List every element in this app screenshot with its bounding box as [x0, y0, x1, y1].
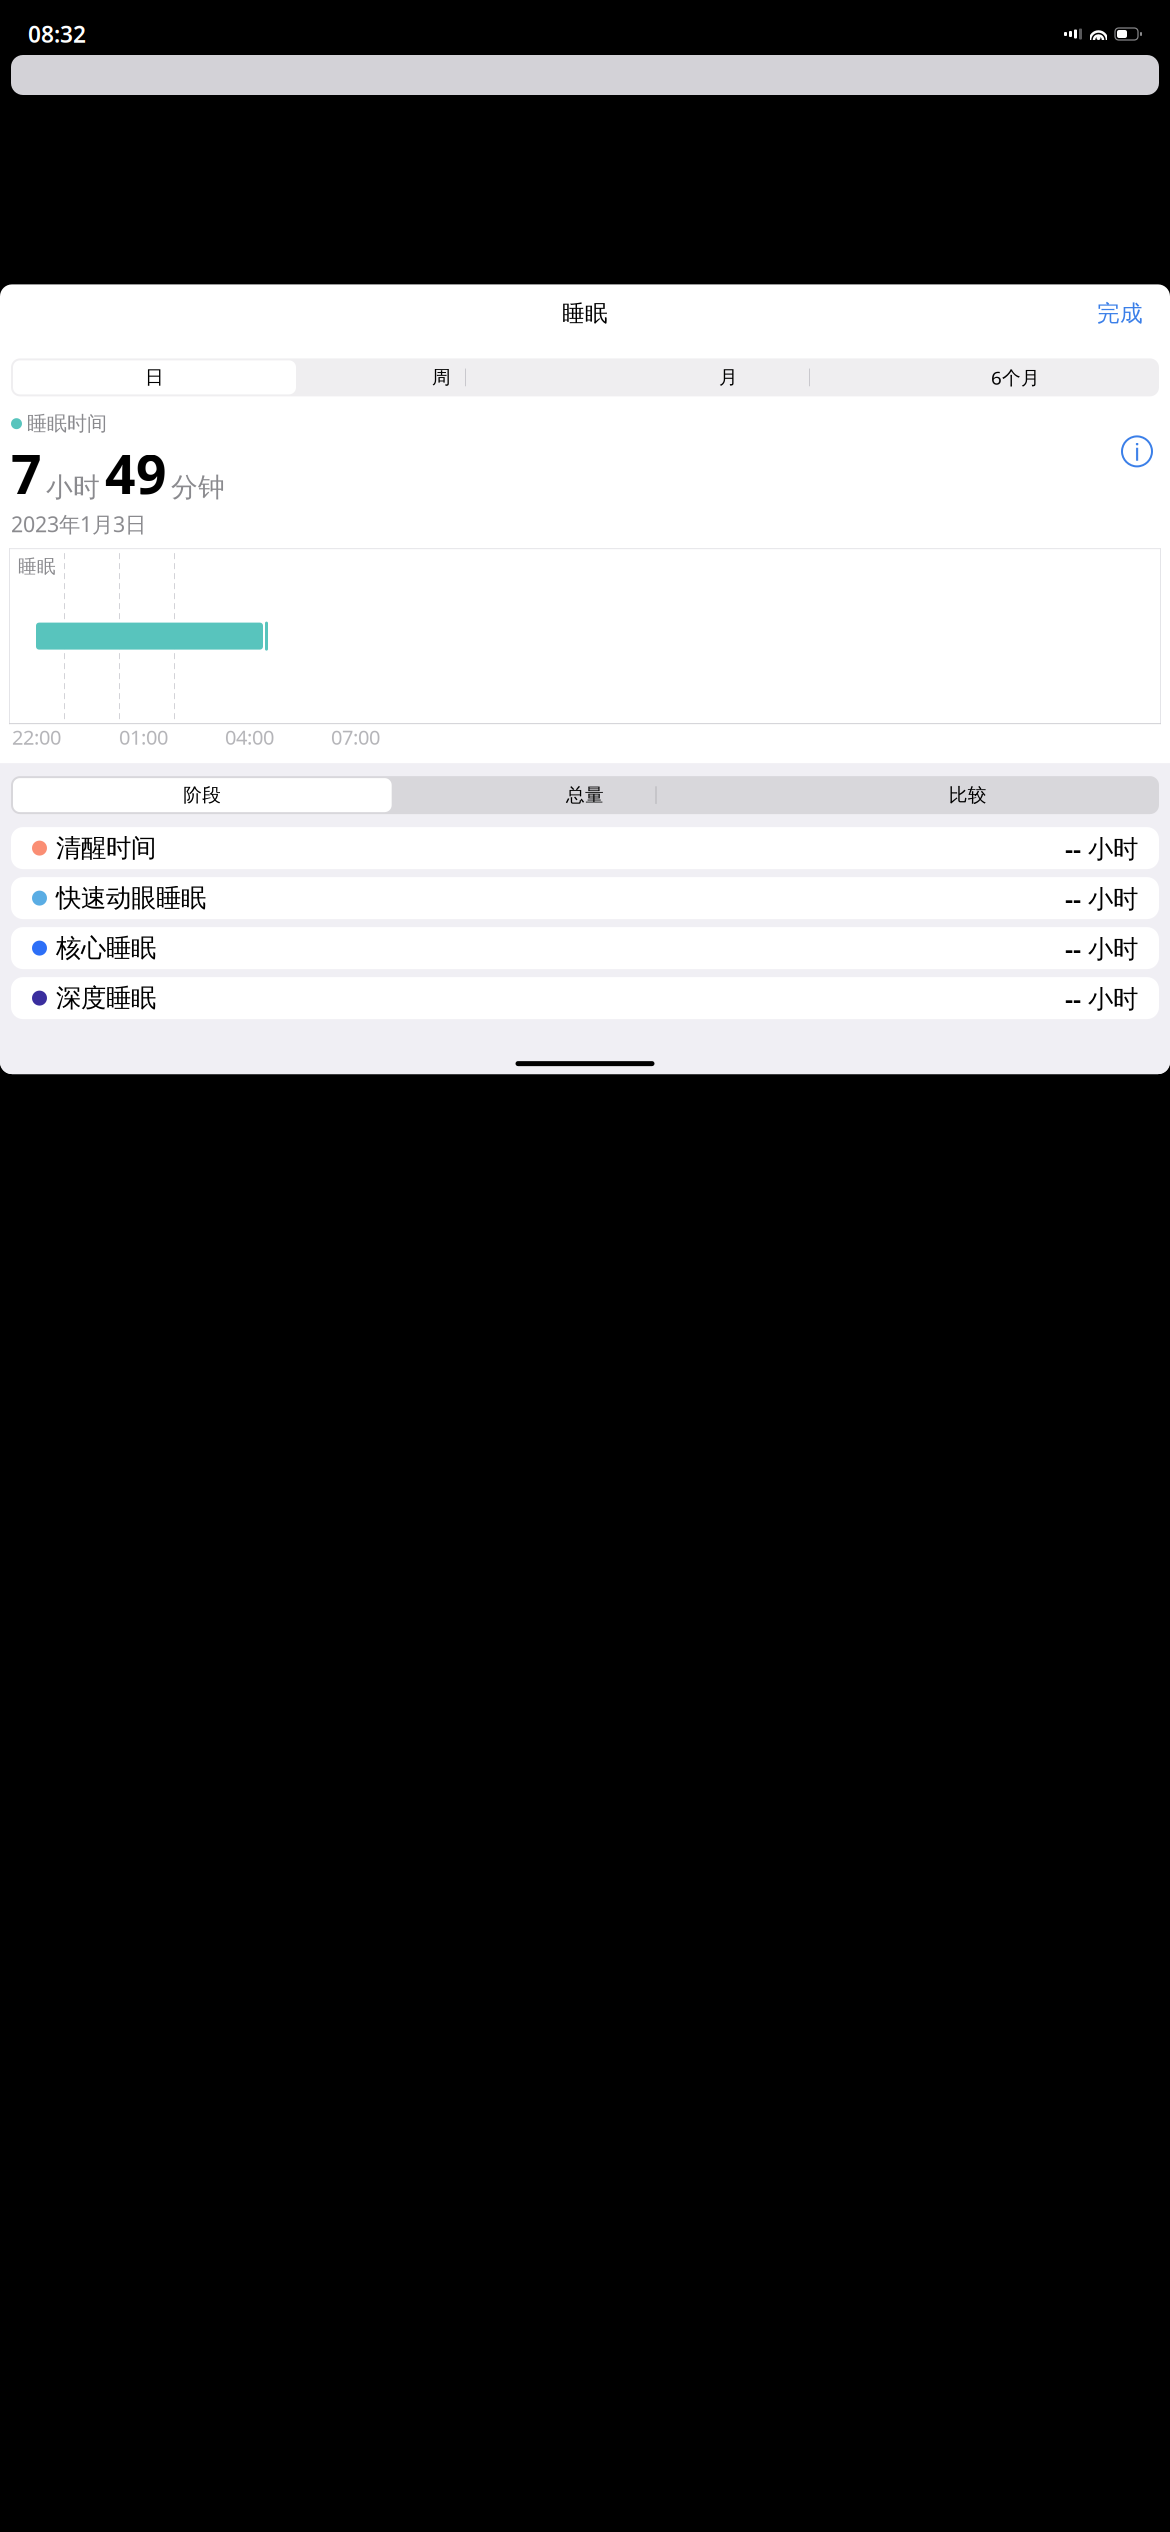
- staticText: 周: [432, 366, 451, 389]
- button[interactable]: 核心睡眠: [11, 927, 1159, 969]
- button[interactable]: 月: [585, 358, 872, 396]
- staticText: 快速动眼睡眠: [56, 883, 206, 914]
- staticText: 深度睡眠: [56, 983, 156, 1014]
- staticText: 核心睡眠: [56, 933, 156, 964]
- staticText: 清醒时间: [56, 833, 156, 864]
- staticText: 分钟: [171, 471, 225, 504]
- button[interactable]: 总量: [394, 776, 776, 814]
- button[interactable]: 完成: [1083, 288, 1157, 338]
- staticText: 6个月: [991, 365, 1040, 390]
- staticText: -- 小时: [1065, 981, 1138, 1015]
- staticText: 日: [145, 366, 164, 389]
- staticText: 小时: [46, 471, 100, 504]
- staticText: i: [1134, 435, 1140, 467]
- button[interactable]: 比较: [776, 776, 1159, 814]
- staticText: 完成: [1097, 299, 1143, 327]
- staticText: 07:00: [331, 724, 380, 750]
- staticText: 22:00: [12, 724, 61, 750]
- staticText: 月: [719, 366, 738, 389]
- staticText: -- 小时: [1065, 831, 1138, 865]
- staticText: 2023年1月3日: [11, 510, 146, 538]
- button[interactable]: 日: [11, 358, 298, 396]
- staticText: 阶段: [183, 784, 221, 806]
- staticText: -- 小时: [1065, 881, 1138, 915]
- button[interactable]: 清醒时间: [11, 827, 1159, 869]
- staticText: 睡眠: [562, 299, 608, 327]
- button[interactable]: 阶段: [11, 776, 394, 814]
- staticText: 比较: [949, 784, 987, 806]
- staticText: 49: [105, 438, 167, 509]
- staticText: 04:00: [225, 724, 274, 750]
- button[interactable]: 深度睡眠: [11, 977, 1159, 1019]
- button[interactable]: 快速动眼睡眠: [11, 877, 1159, 919]
- staticText: 睡眠时间: [27, 411, 107, 436]
- staticText: 01:00: [119, 724, 168, 750]
- staticText: 总量: [566, 784, 604, 806]
- staticText: 睡眠: [18, 555, 56, 578]
- button[interactable]: 周: [298, 358, 585, 396]
- staticText: 7: [11, 438, 42, 509]
- staticText: 08:32: [28, 19, 86, 49]
- button[interactable]: 关于睡眠时间: [1115, 429, 1159, 473]
- button[interactable]: 6个月: [872, 358, 1159, 396]
- staticText: -- 小时: [1065, 931, 1138, 965]
